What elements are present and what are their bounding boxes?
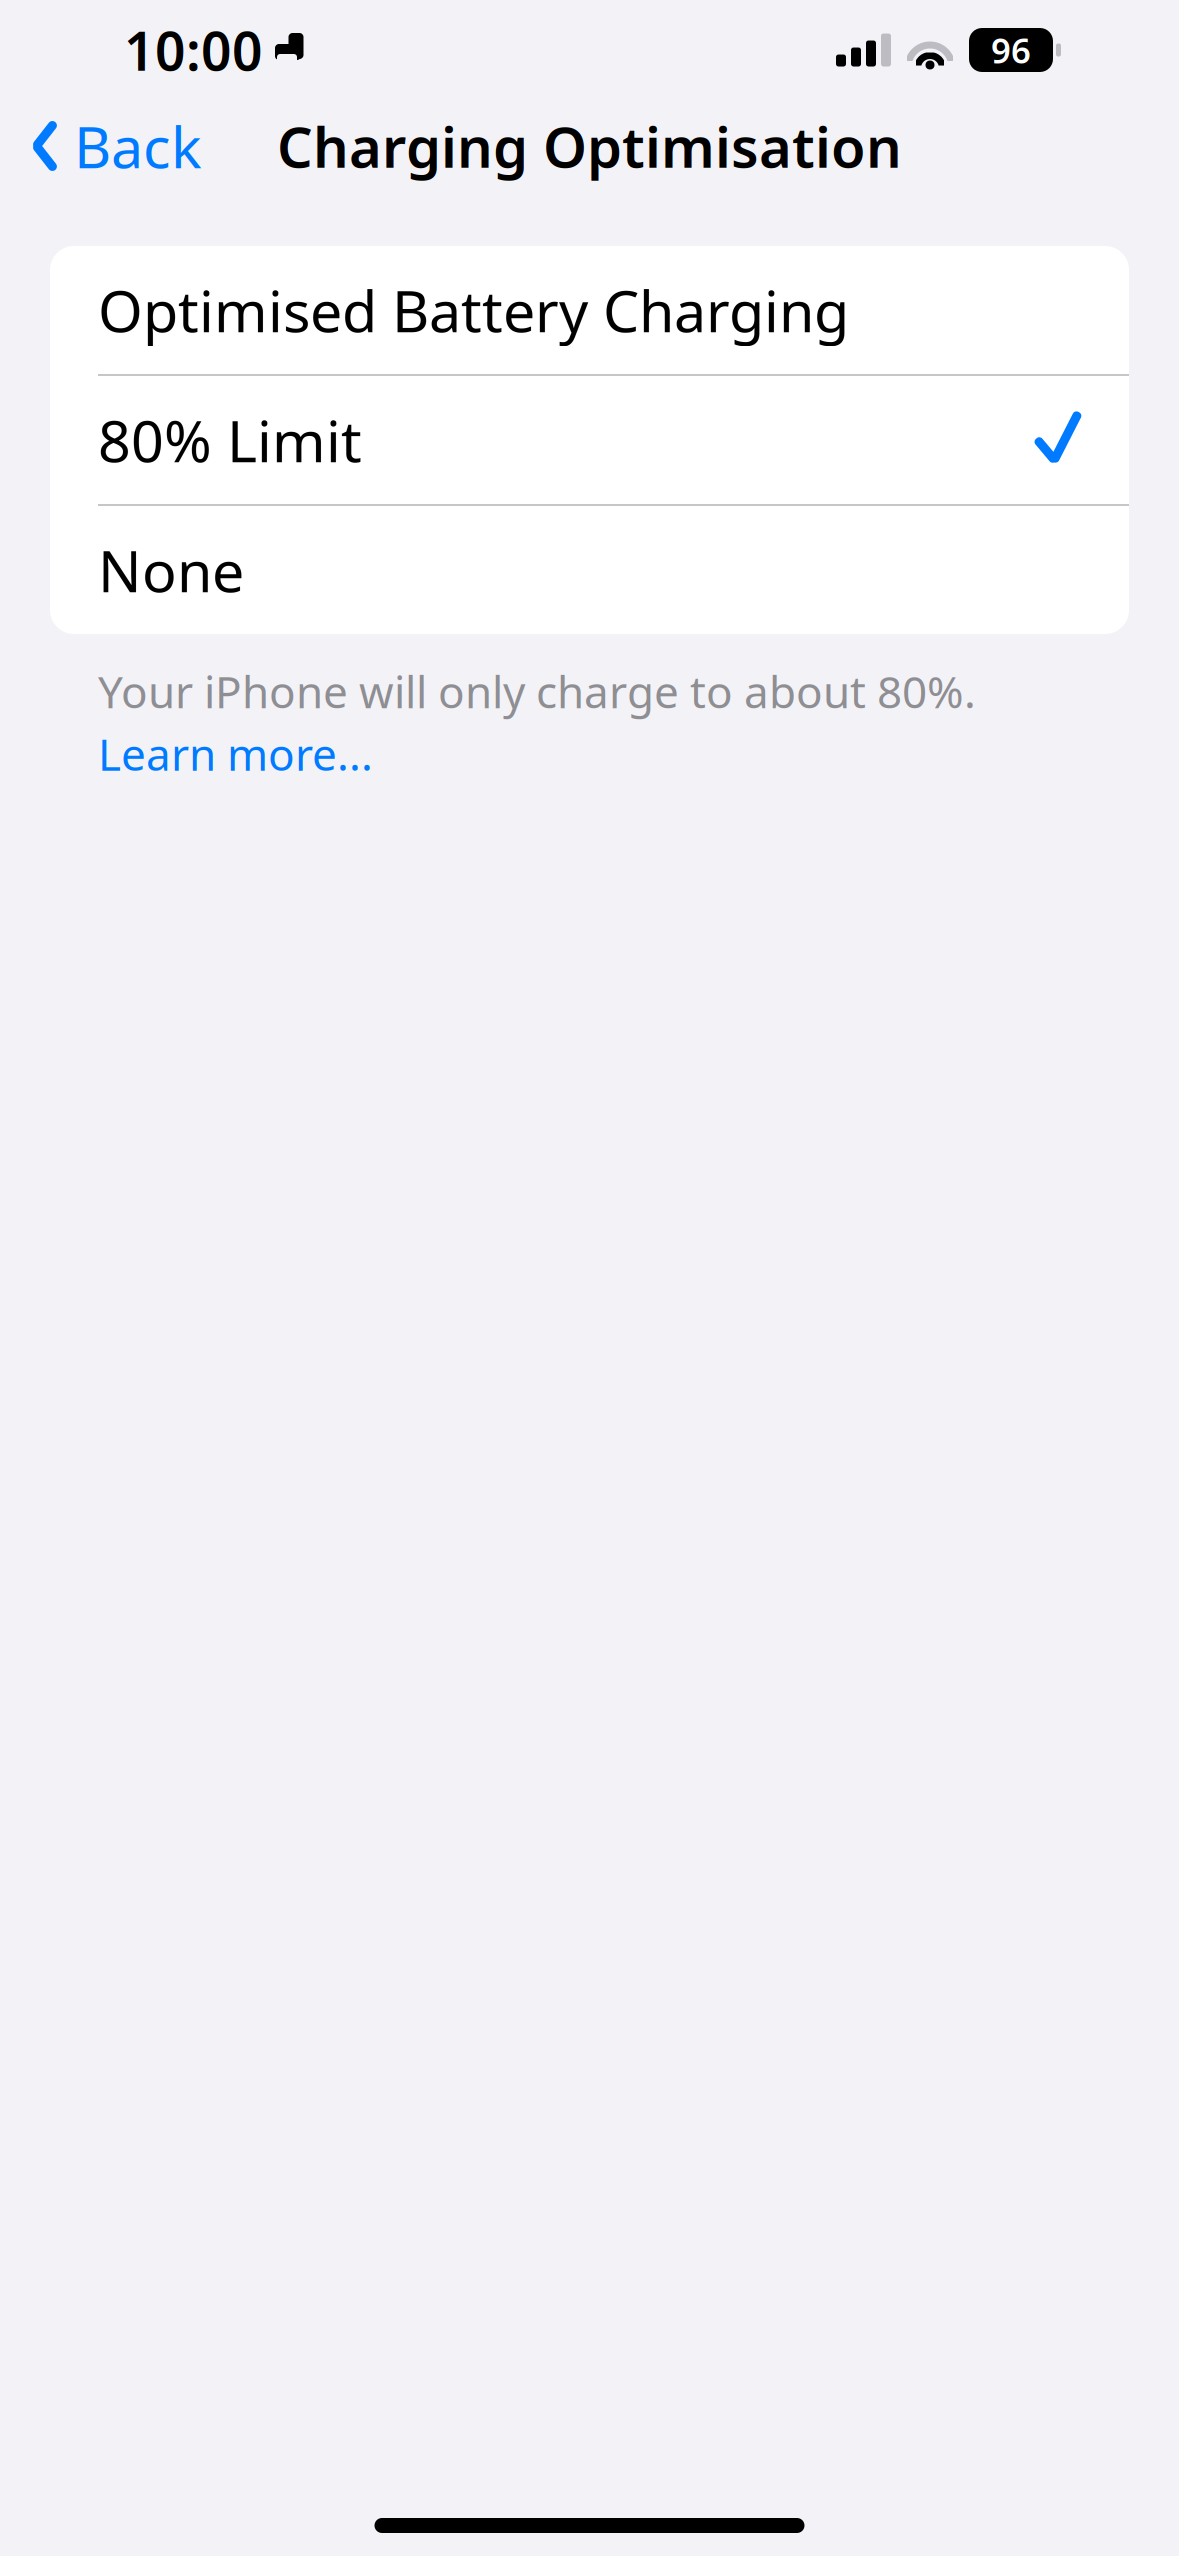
staticText: Back bbox=[74, 108, 202, 184]
staticText: 80% Limit bbox=[98, 402, 362, 478]
staticText: 96 bbox=[991, 27, 1031, 73]
button[interactable]: None bbox=[50, 506, 1129, 634]
staticText: Optimised Battery Charging bbox=[98, 272, 849, 348]
button[interactable]: Learn more... bbox=[98, 724, 373, 783]
button[interactable]: Back bbox=[0, 100, 222, 192]
staticText: None bbox=[98, 532, 244, 608]
button[interactable]: Optimised Battery Charging bbox=[50, 246, 1129, 374]
staticText: 10:00 bbox=[124, 15, 263, 85]
staticText: Charging Optimisation bbox=[277, 109, 902, 183]
button[interactable]: 80% Limit bbox=[50, 376, 1129, 504]
staticText: Learn more... bbox=[98, 724, 373, 783]
staticText: Your iPhone will only charge to about 80… bbox=[98, 662, 976, 720]
